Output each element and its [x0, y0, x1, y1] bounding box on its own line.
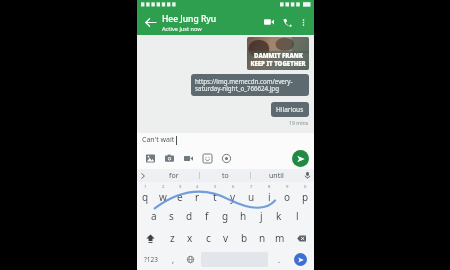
button[interactable]: z: [163, 227, 181, 249]
staticText: w: [159, 190, 167, 204]
button[interactable]: Photo: [247, 37, 309, 70]
staticText: ?123: [144, 255, 158, 264]
staticText: x: [187, 231, 193, 245]
staticText: c: [206, 231, 211, 245]
button[interactable]: Voice input: [301, 169, 314, 182]
staticText: 8: [268, 184, 271, 190]
button[interactable]: c: [199, 227, 217, 249]
staticText: KEEP IT TOGETHER: [250, 60, 306, 68]
button[interactable]: Video: [179, 149, 198, 168]
staticText: 1: [144, 184, 147, 190]
staticText: f: [205, 209, 209, 223]
staticText: ,: [172, 254, 175, 265]
button[interactable]: m: [271, 227, 289, 249]
button[interactable]: 0: [296, 182, 314, 205]
button[interactable]: g: [216, 205, 234, 227]
button[interactable]: s: [162, 205, 180, 227]
staticText: DAMMIT FRANK: [254, 52, 303, 60]
button[interactable]: v: [217, 227, 235, 249]
staticText: for: [169, 171, 179, 181]
staticText: 2: [162, 184, 165, 190]
button[interactable]: until: [251, 169, 301, 182]
staticText: v: [223, 231, 229, 245]
button[interactable]: 2: [154, 182, 171, 205]
staticText: i: [268, 190, 271, 204]
button[interactable]: to: [200, 169, 250, 182]
button[interactable]: .: [271, 249, 287, 270]
button[interactable]: l: [288, 205, 306, 227]
staticText: o: [284, 190, 291, 204]
button[interactable]: b: [235, 227, 253, 249]
staticText: p: [302, 190, 309, 204]
staticText: 4: [196, 184, 199, 190]
button[interactable]: 1: [137, 182, 154, 205]
staticText: a: [151, 209, 157, 223]
staticText: Hilarious: [276, 105, 304, 114]
staticText: t: [213, 190, 217, 204]
button[interactable]: Back: [141, 13, 159, 31]
button[interactable]: n: [253, 227, 271, 249]
button[interactable]: Sticker: [198, 149, 217, 168]
button[interactable]: Send: [294, 253, 307, 266]
button[interactable]: Hilarious: [271, 102, 309, 117]
button[interactable]: f: [198, 205, 216, 227]
button[interactable]: 7: [242, 182, 260, 205]
staticText: 9: [286, 184, 289, 190]
button[interactable]: More options: [296, 15, 310, 29]
staticText: Hee Jung Ryu: [162, 13, 217, 25]
button[interactable]: More suggestions: [137, 169, 149, 182]
staticText: b: [241, 231, 248, 245]
button[interactable]: Change language: [182, 249, 198, 270]
button[interactable]: ,: [165, 249, 182, 270]
button[interactable]: k: [270, 205, 288, 227]
staticText: 7: [250, 184, 253, 190]
button[interactable]: a: [145, 205, 162, 227]
staticText: 0: [304, 184, 307, 190]
staticText: u: [248, 190, 255, 204]
button[interactable]: Send: [292, 150, 309, 167]
staticText: j: [260, 209, 263, 223]
staticText: m: [275, 231, 285, 245]
staticText: l: [296, 209, 299, 223]
staticText: e: [177, 190, 183, 204]
button[interactable]: ?123: [137, 249, 165, 270]
staticText: g: [222, 209, 229, 223]
button[interactable]: 8: [260, 182, 278, 205]
button[interactable]: 6: [224, 182, 242, 205]
button[interactable]: Can't wait: [137, 133, 314, 147]
button[interactable]: Backspace: [289, 227, 314, 249]
button[interactable]: h: [234, 205, 252, 227]
button[interactable]: 5: [206, 182, 224, 205]
button[interactable]: for: [149, 169, 199, 182]
staticText: .: [278, 254, 281, 265]
staticText: s: [169, 209, 174, 223]
button[interactable]: Call: [278, 13, 296, 31]
button[interactable]: Gallery: [141, 149, 160, 168]
button[interactable]: 4: [188, 182, 206, 205]
button[interactable]: Camera: [160, 149, 179, 168]
staticText: Active just now: [162, 25, 202, 32]
staticText: k: [276, 209, 282, 223]
button[interactable]: d: [180, 205, 198, 227]
button[interactable]: Shift: [137, 227, 163, 249]
button[interactable]: Hee Jung Ryu: [162, 13, 260, 32]
button[interactable]: https://img.memecdn.com/every-saturday-n…: [191, 74, 309, 96]
staticText: until: [269, 171, 284, 181]
staticText: 6: [232, 184, 235, 190]
button[interactable]: j: [252, 205, 270, 227]
button[interactable]: 3: [171, 182, 188, 205]
staticText: to: [222, 171, 229, 181]
button[interactable]: More: [217, 149, 236, 168]
staticText: 5: [214, 184, 217, 190]
staticText: https://img.memecdn.com/every-saturday-n…: [195, 77, 305, 93]
staticText: Can't wait: [142, 135, 175, 145]
staticText: h: [240, 209, 247, 223]
staticText: d: [186, 209, 193, 223]
button[interactable]: 9: [278, 182, 296, 205]
staticText: y: [230, 190, 236, 204]
button[interactable]: x: [181, 227, 199, 249]
button[interactable]: Video call: [260, 13, 278, 31]
staticText: 3: [179, 184, 182, 190]
staticText: n: [259, 231, 266, 245]
